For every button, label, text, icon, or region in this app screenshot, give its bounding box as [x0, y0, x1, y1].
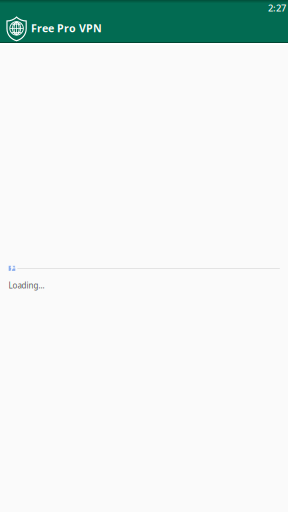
staticText: Loading... [8, 280, 44, 291]
staticText: Free Pro VPN [31, 21, 102, 35]
staticText: 2:27 [268, 2, 286, 14]
button[interactable]: Free Pro VPN [6, 16, 126, 44]
